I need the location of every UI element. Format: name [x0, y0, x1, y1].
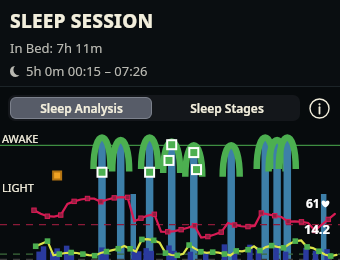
- staticText: LIGHT: [2, 180, 34, 195]
- staticText: 61: [306, 195, 320, 211]
- button[interactable]: Sleep Analysis: [10, 97, 152, 119]
- staticText: AWAKE: [2, 131, 39, 146]
- button[interactable]: Sleep Stages: [154, 95, 300, 121]
- button[interactable]: Info: [306, 95, 332, 121]
- staticText: Sleep Analysis: [40, 100, 123, 116]
- staticText: SLEEP SESSION: [10, 8, 154, 34]
- staticText: 14.2: [304, 220, 330, 238]
- staticText: 5h 0m 00:15 – 07:26: [26, 62, 148, 80]
- staticText: Sleep Stages: [190, 100, 264, 116]
- staticText: In Bed: 7h 11m: [10, 39, 103, 57]
